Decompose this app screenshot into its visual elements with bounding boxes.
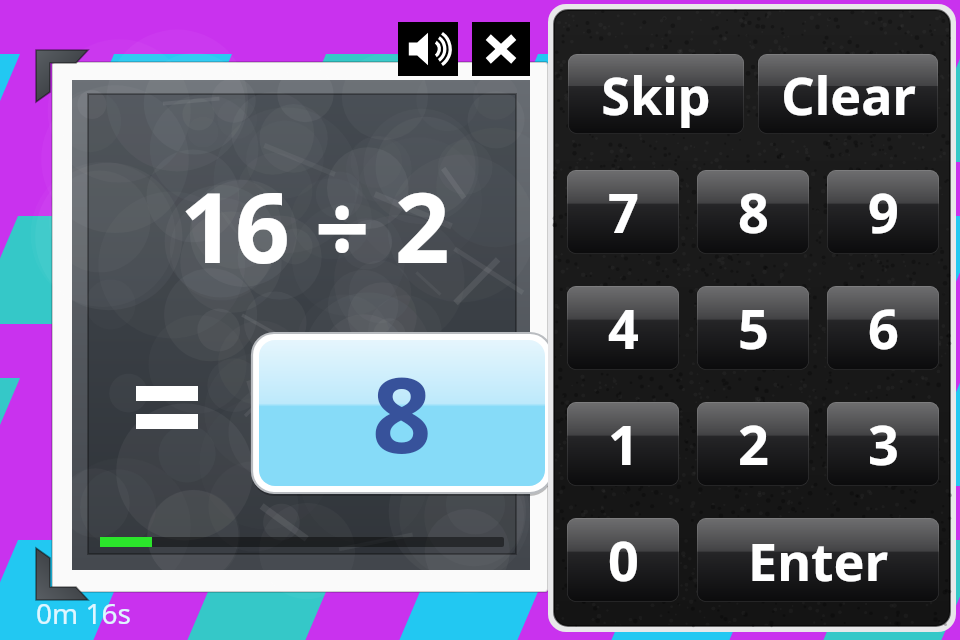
button[interactable]: 8 (252, 333, 552, 493)
staticText: 4 (608, 291, 639, 365)
button[interactable]: 9 (827, 170, 939, 254)
staticText: 6 (868, 291, 899, 365)
staticText: Enter (748, 525, 888, 596)
button[interactable]: Skip (568, 54, 744, 134)
button[interactable]: Toggle sound (398, 22, 458, 76)
staticText: 9 (868, 175, 899, 249)
staticText: 7 (608, 175, 639, 249)
staticText: 0m 16s (36, 594, 131, 630)
button[interactable]: 0 (567, 518, 679, 602)
staticText: 8 (738, 175, 769, 249)
button[interactable]: Close (472, 22, 530, 76)
button[interactable]: 8 (697, 170, 809, 254)
button[interactable]: 3 (827, 402, 939, 486)
staticText: 16 ÷ 2 (180, 160, 450, 275)
button[interactable]: 7 (567, 170, 679, 254)
button[interactable]: 4 (567, 286, 679, 370)
staticText: 5 (738, 291, 769, 365)
staticText: 8 (372, 342, 432, 484)
staticText: 2 (738, 407, 769, 481)
button[interactable]: 6 (827, 286, 939, 370)
button[interactable]: 2 (697, 402, 809, 486)
staticText: 3 (868, 407, 899, 481)
button[interactable]: 5 (697, 286, 809, 370)
staticText: Clear (781, 59, 916, 130)
button[interactable]: 1 (567, 402, 679, 486)
button[interactable]: Enter (697, 518, 939, 602)
staticText: 1 (608, 407, 639, 481)
staticText: 0 (608, 523, 639, 597)
button[interactable]: Clear (758, 54, 938, 134)
staticText: Skip (601, 59, 711, 130)
